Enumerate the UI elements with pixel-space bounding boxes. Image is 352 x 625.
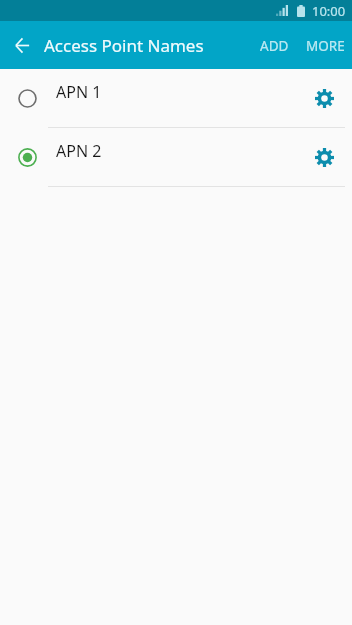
staticText: Access Point Names (44, 34, 204, 57)
staticText: APN 1 (56, 81, 102, 103)
button[interactable]: APN 1 (0, 69, 352, 128)
staticText: APN 2 (56, 140, 102, 162)
staticText: ADD (260, 37, 289, 55)
button[interactable]: APN settings (303, 135, 347, 179)
button[interactable]: ADD (252, 21, 297, 69)
button[interactable]: Navigate up (0, 23, 44, 67)
button[interactable]: MORE (297, 21, 352, 69)
staticText: 10:00 (312, 2, 346, 20)
button[interactable]: APN settings (303, 76, 347, 120)
button[interactable]: APN 2 (0, 128, 352, 187)
staticText: MORE (306, 37, 345, 55)
